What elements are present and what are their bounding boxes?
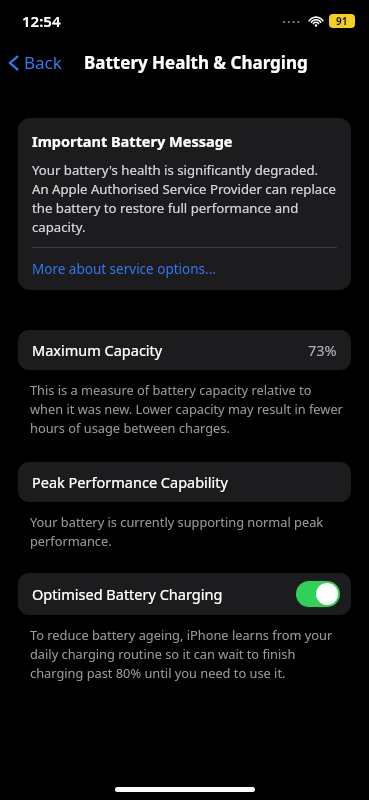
- staticText: Your battery's health is significantly d…: [32, 161, 337, 236]
- button[interactable]: Optimised Battery Charging toggle, on: [296, 581, 340, 607]
- staticText: Maximum Capacity: [32, 340, 163, 360]
- staticText: To reduce battery ageing, iPhone learns …: [30, 626, 345, 681]
- button[interactable]: Back: [0, 47, 68, 78]
- staticText: Battery Health & Charging: [84, 51, 308, 74]
- button[interactable]: More about service options...: [32, 260, 216, 278]
- staticText: 73%: [308, 340, 337, 360]
- staticText: 12:54: [22, 11, 61, 31]
- staticText: Optimised Battery Charging: [32, 584, 223, 604]
- staticText: Peak Performance Capability: [32, 472, 228, 492]
- staticText: Your battery is currently supporting nor…: [30, 513, 345, 549]
- button[interactable]: Peak Performance Capability: [18, 462, 351, 502]
- staticText: This is a measure of battery capacity re…: [30, 381, 345, 436]
- button[interactable]: Important Battery Message: [18, 118, 351, 290]
- staticText: Back: [24, 51, 62, 74]
- staticText: 91: [336, 14, 348, 28]
- staticText: Important Battery Message: [32, 131, 233, 151]
- button[interactable]: Maximum Capacity: [18, 330, 351, 370]
- button[interactable]: Optimised Battery Charging: [18, 573, 351, 615]
